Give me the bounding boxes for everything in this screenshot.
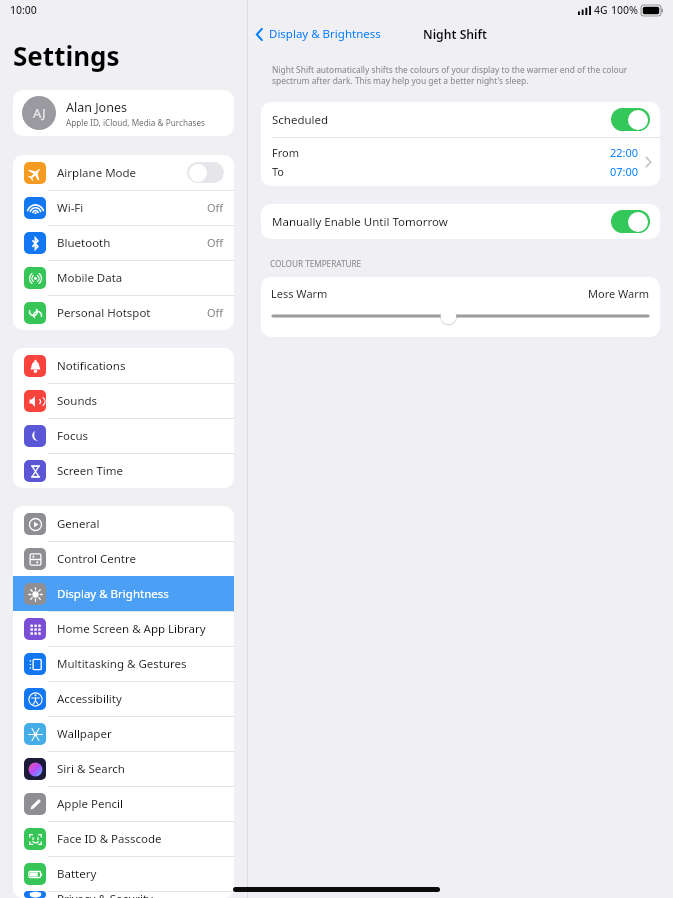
staticText: Bluetooth (57, 235, 111, 251)
staticText: Screen Time (57, 463, 124, 479)
staticText: General (57, 516, 100, 532)
staticText: Display & Brightness (269, 26, 381, 42)
button[interactable]: Control Centre (13, 541, 234, 576)
button[interactable]: Home Screen & App Library (13, 611, 234, 646)
button[interactable]: Bluetooth (13, 225, 234, 260)
staticText: Focus (57, 428, 89, 444)
button[interactable]: Scheduled toggle (611, 108, 650, 131)
button[interactable]: Display & Brightness (254, 26, 381, 42)
button[interactable]: Notifications (13, 348, 234, 383)
staticText: Manually Enable Until Tomorrow (272, 214, 448, 230)
button[interactable]: Siri & Search (13, 751, 234, 786)
staticText: Sounds (57, 393, 98, 409)
staticText: 4G (594, 3, 608, 17)
staticText: From (272, 145, 299, 160)
button[interactable]: Colour temperature slider (272, 306, 649, 326)
staticText: Scheduled (272, 112, 329, 128)
staticText: Accessibility (57, 691, 122, 707)
staticText: Mobile Data (57, 270, 123, 286)
button[interactable]: Airplane Mode (13, 155, 234, 190)
staticText: Off (207, 235, 224, 250)
button[interactable]: From (261, 138, 660, 186)
button[interactable]: Airplane Mode toggle (187, 162, 224, 183)
staticText: Personal Hotspot (57, 305, 151, 321)
staticText: 100% (611, 3, 638, 17)
staticText: Night Shift (423, 26, 488, 43)
staticText: 07:00 (610, 164, 639, 179)
button[interactable]: AJ (13, 90, 234, 136)
staticText: Siri & Search (57, 761, 125, 777)
staticText: Display & Brightness (57, 586, 169, 602)
button[interactable]: Apple Pencil (13, 786, 234, 821)
staticText: Less Warm (271, 286, 328, 301)
staticText: Control Centre (57, 551, 136, 567)
staticText: Alan Jones (66, 99, 127, 116)
button[interactable]: Wallpaper (13, 716, 234, 751)
staticText: Wallpaper (57, 726, 112, 742)
button[interactable]: Face ID & Passcode (13, 821, 234, 856)
staticText: Privacy & Security (57, 891, 153, 898)
button[interactable]: Screen Time (13, 453, 234, 488)
button[interactable]: Battery (13, 856, 234, 891)
staticText: Home Screen & App Library (57, 621, 206, 637)
button[interactable]: Sounds (13, 383, 234, 418)
button[interactable]: Scheduled (261, 102, 660, 137)
staticText: Airplane Mode (57, 165, 137, 181)
staticText: Notifications (57, 358, 126, 374)
staticText: Apple Pencil (57, 796, 123, 812)
staticText: To (272, 164, 285, 179)
staticText: Off (207, 200, 224, 215)
button[interactable]: Mobile Data (13, 260, 234, 295)
button[interactable]: Manually Enable Until Tomorrow (261, 204, 660, 239)
button[interactable]: Display & Brightness (13, 576, 234, 611)
staticText: Night Shift automatically shifts the col… (272, 64, 655, 86)
button[interactable]: Personal Hotspot (13, 295, 234, 330)
staticText: AJ (33, 104, 46, 122)
staticText: Settings (13, 38, 120, 73)
staticText: More Warm (588, 286, 650, 301)
button[interactable]: Privacy & Security (13, 891, 234, 898)
staticText: Apple ID, iCloud, Media & Purchases (66, 117, 205, 128)
button[interactable]: Multitasking & Gestures (13, 646, 234, 681)
staticText: 10:00 (10, 3, 37, 17)
staticText: Off (207, 305, 224, 320)
button[interactable]: Wi-Fi (13, 190, 234, 225)
staticText: Battery (57, 866, 97, 882)
staticText: Face ID & Passcode (57, 831, 162, 847)
button[interactable]: Manually enable toggle (611, 210, 650, 233)
staticText: COLOUR TEMPERATURE (270, 258, 362, 269)
staticText: 22:00 (610, 145, 639, 160)
button[interactable]: General (13, 506, 234, 541)
button[interactable]: Focus (13, 418, 234, 453)
button[interactable]: Accessibility (13, 681, 234, 716)
staticText: Wi-Fi (57, 200, 84, 216)
staticText: Multitasking & Gestures (57, 656, 187, 672)
